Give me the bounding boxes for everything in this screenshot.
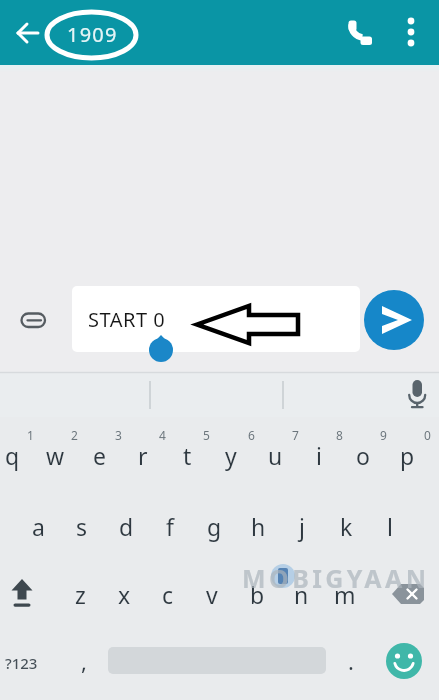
button[interactable]: f (149, 498, 191, 554)
button[interactable]: k (325, 498, 367, 554)
button[interactable]: g (193, 498, 235, 554)
button[interactable]: a (17, 498, 59, 554)
staticText: 3 (115, 427, 122, 443)
staticText: l (387, 511, 393, 542)
button[interactable] (338, 10, 382, 54)
staticText: c (162, 579, 174, 610)
staticText: o (356, 440, 370, 471)
button[interactable]: l (369, 498, 411, 554)
button[interactable]: , (63, 633, 105, 689)
staticText: u (268, 440, 283, 471)
staticText: e (93, 440, 106, 471)
staticText: w (46, 440, 65, 471)
button[interactable]: START 0 (72, 286, 360, 352)
button[interactable]: m (324, 566, 366, 622)
staticText: 1909 (67, 21, 118, 48)
button[interactable] (399, 375, 435, 415)
staticText: MOBIGYAAN (242, 561, 430, 593)
staticText: f (166, 511, 174, 542)
button[interactable]: q (0, 427, 33, 483)
staticText: d (119, 511, 134, 542)
button[interactable]: u (254, 427, 296, 483)
staticText: 5 (203, 427, 210, 443)
staticText: . (348, 646, 354, 676)
staticText: j (299, 511, 305, 542)
button[interactable]: i (298, 427, 340, 483)
staticText: 7 (292, 427, 299, 443)
button[interactable]: c (147, 566, 189, 622)
button[interactable] (385, 564, 435, 622)
staticText: 4 (159, 427, 166, 443)
staticText: g (207, 511, 222, 542)
staticText: t (183, 440, 192, 471)
staticText: r (138, 440, 148, 471)
button[interactable]: b (236, 566, 278, 622)
staticText: x (118, 579, 131, 610)
button[interactable] (394, 10, 428, 56)
button[interactable]: s (61, 498, 103, 554)
button[interactable]: z (59, 566, 101, 622)
button[interactable]: n (280, 566, 322, 622)
button[interactable]: h (237, 498, 279, 554)
button[interactable] (14, 304, 50, 340)
button[interactable]: t (166, 427, 208, 483)
button[interactable]: o (342, 427, 384, 483)
staticText: v (206, 579, 218, 610)
staticText: 9 (380, 427, 387, 443)
staticText: z (75, 579, 86, 610)
button[interactable] (7, 13, 47, 53)
button[interactable]: v (191, 566, 233, 622)
staticText: 2 (71, 427, 78, 443)
staticText: p (400, 440, 415, 471)
button[interactable]: ?123 (0, 635, 43, 691)
staticText: h (251, 511, 266, 542)
button[interactable]: y (210, 427, 252, 483)
staticText: b (250, 579, 265, 610)
staticText: 6 (248, 427, 255, 443)
staticText: n (294, 579, 309, 610)
staticText: m (334, 579, 356, 610)
staticText: , (81, 646, 87, 676)
button[interactable]: w (34, 427, 76, 483)
button[interactable]: r (122, 427, 164, 483)
button[interactable]: p (386, 427, 428, 483)
staticText: k (340, 511, 353, 542)
staticText: y (225, 440, 237, 471)
button[interactable]: . (330, 633, 372, 689)
button[interactable]: j (281, 498, 323, 554)
staticText: 1 (27, 427, 34, 443)
staticText: a (32, 511, 45, 542)
staticText: 8 (336, 427, 343, 443)
button[interactable] (364, 290, 424, 350)
staticText: s (76, 511, 88, 542)
button[interactable] (0, 564, 50, 622)
staticText: 0 (424, 427, 431, 443)
staticText: START 0 (88, 306, 166, 333)
button[interactable] (386, 643, 422, 679)
staticText: ?123 (5, 653, 38, 673)
button[interactable]: d (105, 498, 147, 554)
staticText: q (5, 440, 20, 471)
button[interactable]: e (78, 427, 120, 483)
button[interactable]: x (103, 566, 145, 622)
staticText: i (316, 440, 322, 471)
